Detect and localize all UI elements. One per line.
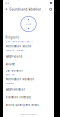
staticText: Volume — [6, 62, 15, 66]
staticText: Ticktock — [6, 82, 14, 85]
button[interactable]: Back — [5, 7, 8, 11]
staticText: Ringtone — [6, 36, 19, 39]
staticText: Basic call — [6, 73, 16, 76]
staticText: 9:41 — [5, 1, 9, 4]
button[interactable]: System vibration — [6, 86, 51, 93]
staticText: ▮▮ — [50, 1, 52, 4]
staticText: Call vibration — [6, 69, 24, 72]
staticText: Over the Horizon • Bell 1 — [6, 40, 33, 43]
staticText: Notification vibration — [6, 78, 35, 81]
staticText: System sound — [6, 55, 23, 58]
staticText: Mute — [26, 22, 31, 25]
staticText: System vibration — [6, 88, 26, 91]
button[interactable]: System sound — [6, 53, 51, 60]
button[interactable]: Vibration intensity — [6, 93, 51, 101]
staticText: Sounds and vibration — [9, 7, 41, 11]
button[interactable]: Call vibration — [6, 68, 51, 77]
button[interactable]: Notification sound — [6, 44, 51, 53]
button[interactable]: Notification vibration — [6, 77, 51, 86]
staticText: Vibration intensity — [6, 95, 31, 99]
button[interactable]: Search — [49, 7, 52, 11]
button[interactable]: Sound quality and effects — [6, 101, 51, 109]
staticText: Sound quality and effects — [6, 103, 39, 107]
staticText: Whistle • Default — [6, 49, 25, 52]
button[interactable]: Volume — [6, 60, 51, 68]
button[interactable]: Ringtone — [6, 35, 51, 44]
staticText: Notification sound — [6, 45, 32, 48]
